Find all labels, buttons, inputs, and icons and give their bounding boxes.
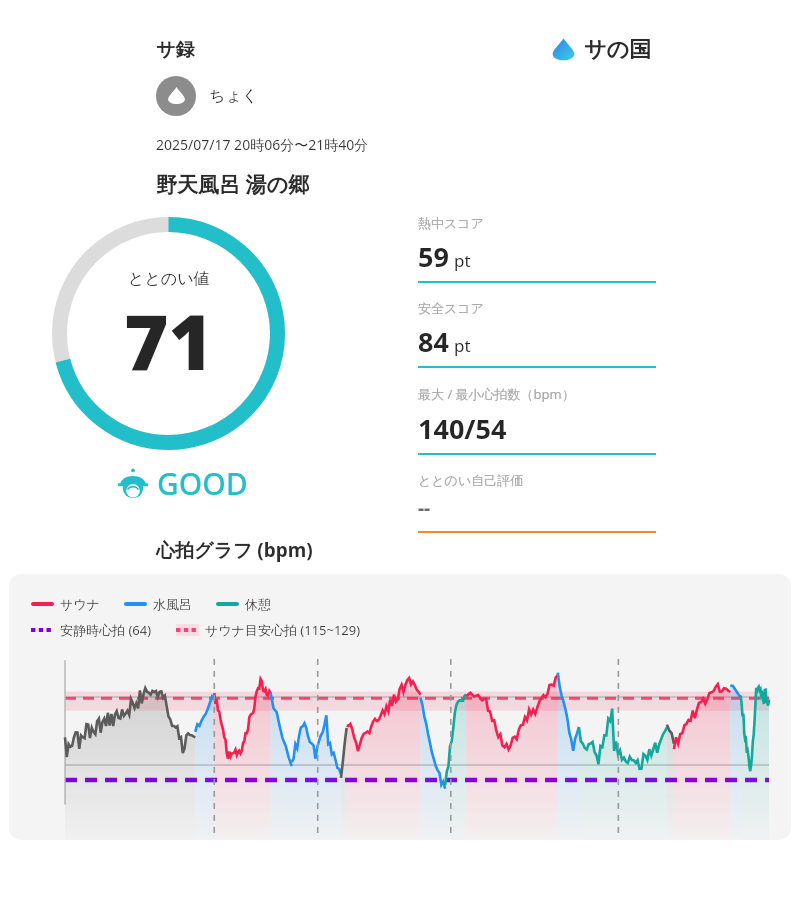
staticText: 59	[418, 238, 449, 275]
staticText: 84	[418, 323, 449, 360]
staticText: --	[418, 495, 431, 521]
staticText: ととのい自己評価	[418, 472, 524, 488]
staticText: 安全スコア	[418, 300, 484, 316]
staticText: 水風呂	[153, 596, 192, 612]
staticText: pt	[454, 334, 471, 357]
staticText: ちょく	[209, 86, 259, 106]
button[interactable]: 安全スコア	[418, 300, 656, 385]
button[interactable]: ちょく	[156, 76, 259, 116]
button[interactable]: サの国	[550, 36, 652, 64]
staticText: サの国	[584, 36, 652, 64]
staticText: 心拍グラフ (bpm)	[156, 537, 313, 563]
button[interactable]: GOOD	[116, 463, 248, 504]
staticText: 熱中スコア	[418, 215, 484, 231]
staticText: 2025/07/17 20時06分〜21時40分	[156, 135, 369, 154]
staticText: 最大 / 最小心拍数（bpm）	[418, 385, 575, 403]
staticText: 140/54	[418, 410, 507, 447]
staticText: 安静時心拍 (64)	[60, 621, 152, 639]
button[interactable]: 最大 / 最小心拍数（bpm）	[418, 385, 656, 472]
staticText: pt	[454, 249, 471, 272]
staticText: 71	[124, 289, 214, 393]
staticText: 休憩	[245, 596, 271, 612]
staticText: サ録	[156, 38, 195, 62]
staticText: GOOD	[157, 463, 248, 504]
staticText: 野天風呂 湯の郷	[156, 170, 309, 199]
button[interactable]: ととのい自己評価	[418, 472, 656, 537]
staticText: サウナ	[60, 596, 100, 612]
staticText: ととのい値	[128, 269, 210, 289]
button[interactable]: 熱中スコア	[418, 215, 656, 300]
staticText: サウナ目安心拍 (115~129)	[205, 621, 361, 639]
